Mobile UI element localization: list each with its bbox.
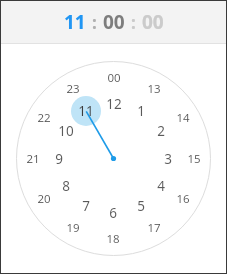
button[interactable]: 17 <box>141 215 167 241</box>
button[interactable]: 6 <box>100 200 126 226</box>
button[interactable]: 5 <box>128 193 154 219</box>
button[interactable]: 10 <box>53 118 79 144</box>
button[interactable]: 00 <box>140 9 166 35</box>
button[interactable]: 15 <box>181 146 207 172</box>
staticText: 1 <box>137 102 145 120</box>
button[interactable]: 12 <box>101 91 127 117</box>
button[interactable]: 9 <box>46 146 72 172</box>
staticText: 15 <box>187 151 201 167</box>
button[interactable]: 19 <box>60 215 86 241</box>
staticText: 5 <box>137 197 145 215</box>
staticText: 10 <box>58 122 74 140</box>
button[interactable]: 16 <box>170 186 196 212</box>
button[interactable]: 4 <box>148 173 174 199</box>
staticText: 21 <box>26 151 40 167</box>
staticText: : <box>131 11 136 34</box>
staticText: 12 <box>106 95 122 113</box>
button[interactable]: 22 <box>31 105 57 131</box>
button[interactable]: 21 <box>20 146 46 172</box>
staticText: 18 <box>106 231 120 247</box>
button[interactable]: 00 <box>101 9 127 35</box>
button[interactable]: 8 <box>53 173 79 199</box>
staticText: 11 <box>64 9 86 35</box>
staticText: 17 <box>147 220 161 236</box>
button[interactable]: 23 <box>60 76 86 102</box>
staticText: 11 <box>78 102 94 120</box>
button[interactable]: 7 <box>73 193 99 219</box>
button[interactable]: 3 <box>155 146 181 172</box>
staticText: 22 <box>37 110 51 126</box>
button[interactable]: 20 <box>31 186 57 212</box>
staticText: 9 <box>55 150 63 168</box>
staticText: 4 <box>157 177 165 195</box>
staticText: 7 <box>82 197 90 215</box>
staticText: 16 <box>176 191 190 207</box>
staticText: 14 <box>176 110 190 126</box>
button[interactable]: 11 <box>62 9 88 35</box>
staticText: 20 <box>37 191 51 207</box>
staticText: 23 <box>66 81 80 97</box>
button[interactable]: 1 <box>128 98 154 124</box>
staticText: 3 <box>164 150 172 168</box>
button[interactable]: Selected hour 11 <box>71 96 101 126</box>
staticText: 00 <box>142 9 164 35</box>
staticText: 19 <box>66 220 80 236</box>
staticText: 13 <box>147 81 161 97</box>
staticText: 00 <box>103 9 125 35</box>
staticText: 2 <box>157 122 165 140</box>
button[interactable]: 13 <box>141 76 167 102</box>
button[interactable]: 2 <box>148 118 174 144</box>
button[interactable]: 14 <box>170 105 196 131</box>
staticText: : <box>92 11 97 34</box>
button[interactable]: 18 <box>100 226 126 252</box>
staticText: 8 <box>62 177 70 195</box>
button[interactable]: 00 <box>101 65 127 91</box>
button[interactable]: 11 <box>73 98 99 124</box>
staticText: 6 <box>109 204 117 222</box>
staticText: 00 <box>107 70 121 86</box>
